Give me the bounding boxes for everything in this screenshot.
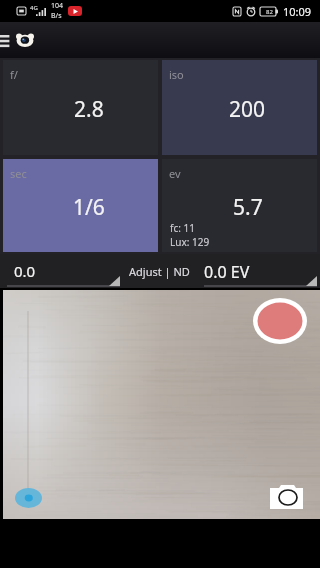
button[interactable]: Menu	[0, 26, 14, 54]
staticText: f/	[10, 67, 18, 82]
staticText: 10:09	[283, 4, 312, 19]
button[interactable]: iso	[162, 60, 317, 155]
button[interactable]: sec	[3, 159, 158, 252]
staticText: sec	[10, 166, 27, 181]
staticText: 104	[51, 1, 64, 11]
staticText: Adjust | ND	[129, 264, 190, 279]
staticText: B/s	[51, 11, 62, 21]
staticText: 2.8	[74, 95, 104, 124]
staticText: 4G	[30, 4, 38, 12]
button[interactable]: f/	[3, 60, 158, 155]
staticText: 200	[229, 95, 266, 124]
staticText: ev	[169, 166, 181, 181]
staticText: 0.0	[14, 261, 36, 281]
button[interactable]: 0.0 EV	[200, 254, 317, 288]
staticText: 1/6	[73, 193, 105, 222]
staticText: 0.0 EV	[204, 261, 250, 283]
staticText: Lux: 129	[170, 235, 210, 249]
button[interactable]: Take photo	[265, 485, 308, 514]
staticText: iso	[169, 67, 184, 82]
staticText: 82	[266, 8, 273, 16]
staticText: 5.7	[233, 193, 263, 222]
button[interactable]: 0.0	[3, 254, 120, 288]
button[interactable]: Light meter	[14, 25, 36, 55]
staticText: fc: 11	[170, 221, 195, 235]
button[interactable]: ev	[162, 159, 317, 252]
